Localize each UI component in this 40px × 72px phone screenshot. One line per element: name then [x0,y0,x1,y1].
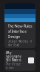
button[interactable]: The New Rules of Interface Design [4,3,35,48]
button[interactable]: Why Typography Still Matters [4,50,35,71]
staticText: The Verge · 6 min [6,62,23,70]
staticText: The New Rules of Interface Design [7,23,32,39]
staticText: Design Weekly · 8 min read [7,40,32,47]
staticText: Why Typography Still Matters [6,51,21,62]
